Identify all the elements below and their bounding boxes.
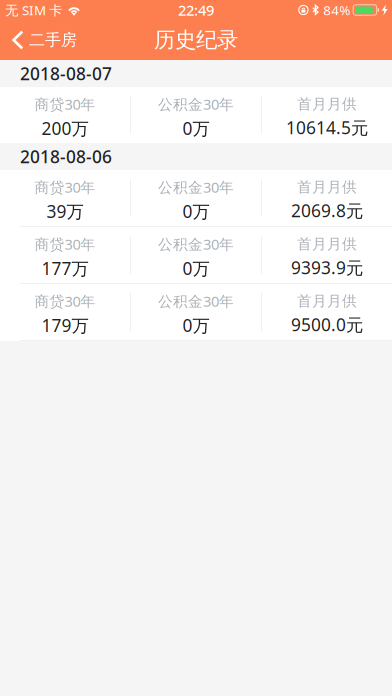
staticText: 179万 bbox=[41, 314, 88, 337]
button[interactable]: 商贷30年 bbox=[0, 170, 392, 226]
staticText: 0万 bbox=[182, 257, 209, 280]
staticText: 2018-08-06 bbox=[20, 145, 112, 168]
staticText: 177万 bbox=[41, 257, 88, 280]
button[interactable]: 商贷30年 bbox=[0, 227, 392, 283]
button[interactable]: 商贷30年 bbox=[0, 87, 392, 143]
button[interactable]: 二手房 bbox=[0, 20, 87, 60]
staticText: 2069.8元 bbox=[291, 199, 363, 222]
staticText: 公积金30年 bbox=[158, 94, 234, 114]
staticText: 首月月供 bbox=[297, 178, 357, 196]
staticText: 39万 bbox=[46, 200, 83, 223]
staticText: 84% bbox=[323, 1, 350, 19]
staticText: 200万 bbox=[41, 117, 88, 140]
staticText: 9500.0元 bbox=[291, 313, 363, 336]
staticText: 商贷30年 bbox=[34, 177, 95, 197]
staticText: 9393.9元 bbox=[291, 256, 363, 279]
staticText: 首月月供 bbox=[297, 292, 357, 310]
staticText: 10614.5元 bbox=[286, 116, 368, 139]
staticText: 0万 bbox=[182, 314, 209, 337]
staticText: 公积金30年 bbox=[158, 291, 234, 311]
staticText: 公积金30年 bbox=[158, 177, 234, 197]
staticText: 22:49 bbox=[178, 0, 214, 20]
staticText: 商贷30年 bbox=[34, 94, 95, 114]
staticText: 二手房 bbox=[29, 30, 77, 50]
staticText: 公积金30年 bbox=[158, 234, 234, 254]
staticText: 历史纪录 bbox=[154, 27, 238, 53]
staticText: 2018-08-07 bbox=[20, 62, 112, 85]
button[interactable]: 商贷30年 bbox=[0, 284, 392, 340]
staticText: 商贷30年 bbox=[34, 234, 95, 254]
staticText: 商贷30年 bbox=[34, 291, 95, 311]
staticText: 0万 bbox=[182, 200, 209, 223]
staticText: 首月月供 bbox=[297, 95, 357, 113]
staticText: 无 SIM 卡 bbox=[5, 1, 62, 19]
staticText: 首月月供 bbox=[297, 235, 357, 253]
staticText: 0万 bbox=[182, 117, 209, 140]
